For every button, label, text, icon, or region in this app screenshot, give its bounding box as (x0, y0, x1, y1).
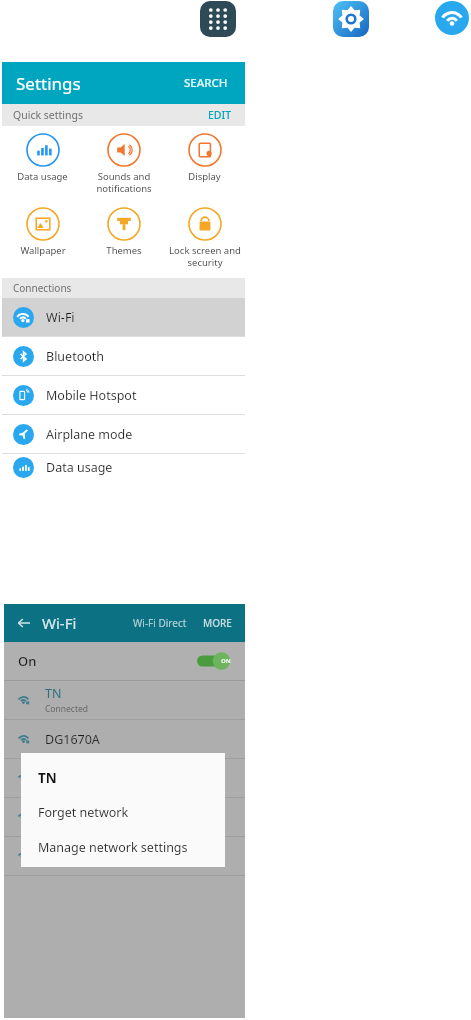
button[interactable] (4, 759, 245, 797)
button[interactable]: Wi-Fi (435, 1, 469, 35)
button[interactable]: Display (164, 130, 245, 186)
button[interactable]: MORE (200, 613, 235, 633)
staticText: Display (188, 170, 221, 183)
staticText: TN (38, 769, 57, 787)
staticText: Forget network (38, 804, 129, 821)
staticText: Manage network settings (38, 839, 188, 856)
button[interactable]: SEARCH (181, 72, 231, 94)
staticText: Quick settings (13, 108, 83, 122)
staticText: SEARCH (184, 75, 228, 91)
button[interactable] (4, 837, 245, 875)
staticText: Sounds and notifications (96, 170, 152, 195)
button[interactable]: Wi-Fi Direct (130, 613, 190, 633)
button[interactable]: Themes (83, 204, 164, 260)
staticText: Wallpaper (20, 244, 66, 257)
staticText: Wi-Fi (42, 613, 77, 633)
staticText: Connections (13, 281, 72, 295)
staticText: TN (45, 685, 62, 702)
staticText: Data usage (46, 459, 113, 476)
button[interactable]: Wi-Fi (2, 298, 245, 336)
staticText: Settings (16, 72, 81, 95)
button[interactable]: Data usage (2, 130, 83, 186)
staticText: Lock screen and security (169, 244, 241, 269)
staticText: MORE (203, 616, 232, 630)
button[interactable]: Forget network (38, 804, 225, 821)
staticText: On (18, 652, 37, 670)
staticText: DG1670A (45, 731, 100, 748)
staticText: Mobile Hotspot (46, 387, 137, 404)
button[interactable]: Airplane mode (2, 415, 245, 453)
button[interactable]: EDIT (206, 106, 234, 124)
button[interactable]: Manage network settings (38, 839, 225, 856)
button[interactable]: Back (14, 613, 34, 633)
button[interactable]: Sounds and notifications (83, 130, 164, 198)
button[interactable]: On (4, 642, 245, 680)
staticText: Bluetooth (46, 348, 105, 365)
staticText: Wi-Fi Direct (133, 616, 187, 630)
button[interactable]: Mobile Hotspot (2, 376, 245, 414)
staticText: Airplane mode (46, 426, 133, 443)
button[interactable]: Data usage (2, 454, 245, 480)
staticText: Themes (106, 244, 142, 257)
staticText: ON (221, 657, 231, 665)
button[interactable]: TN (4, 681, 245, 719)
button[interactable]: Lock screen and security (164, 204, 245, 272)
button[interactable]: DG1670A (4, 720, 245, 758)
button[interactable]: Apps (200, 1, 236, 37)
button[interactable]: Wallpaper (2, 204, 83, 260)
button[interactable]: Settings (333, 1, 369, 37)
button[interactable]: Bluetooth (2, 337, 245, 375)
staticText: Wi-Fi (46, 309, 75, 326)
staticText: Connected (45, 703, 88, 715)
button[interactable] (4, 798, 245, 836)
staticText: Data usage (17, 170, 68, 183)
staticText: EDIT (208, 108, 232, 122)
